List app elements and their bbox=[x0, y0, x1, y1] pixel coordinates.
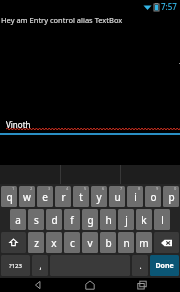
button[interactable]: , bbox=[32, 255, 48, 276]
staticText: 3 bbox=[48, 186, 51, 191]
button[interactable]: t bbox=[73, 186, 89, 207]
button[interactable]: c bbox=[64, 232, 80, 253]
staticText: 9 bbox=[156, 186, 159, 191]
button[interactable]: v bbox=[82, 232, 98, 253]
staticText: j bbox=[125, 213, 128, 227]
staticText: m bbox=[139, 236, 149, 250]
staticText: l bbox=[161, 213, 164, 227]
button[interactable]: Vinoth bbox=[0, 31, 180, 135]
staticText: q bbox=[6, 190, 13, 204]
button[interactable]: q bbox=[1, 186, 17, 207]
staticText: d bbox=[51, 213, 58, 227]
button[interactable]: x bbox=[46, 232, 62, 253]
button[interactable]: b bbox=[100, 232, 116, 253]
staticText: 7 bbox=[120, 186, 123, 191]
button[interactable]: k bbox=[136, 209, 152, 230]
staticText: u bbox=[114, 190, 121, 204]
button[interactable]: g bbox=[82, 209, 98, 230]
staticText: n bbox=[123, 236, 130, 250]
staticText: h bbox=[105, 213, 112, 227]
button[interactable]: Home bbox=[77, 278, 103, 292]
staticText: b bbox=[105, 236, 112, 250]
button[interactable]: m bbox=[136, 232, 152, 253]
staticText: r bbox=[61, 190, 66, 204]
button[interactable]: . bbox=[132, 255, 148, 276]
button[interactable]: z bbox=[28, 232, 44, 253]
button[interactable]: j bbox=[118, 209, 134, 230]
button[interactable]: Shift bbox=[1, 232, 26, 253]
staticText: a bbox=[15, 213, 21, 227]
staticText: 7:57 bbox=[161, 1, 177, 12]
staticText: Done bbox=[155, 261, 174, 271]
staticText: 0 bbox=[174, 186, 177, 191]
staticText: w bbox=[23, 190, 31, 204]
button[interactable]: d bbox=[46, 209, 62, 230]
staticText: v bbox=[87, 236, 93, 250]
staticText: 6 bbox=[102, 186, 105, 191]
button[interactable]: r bbox=[55, 186, 71, 207]
button[interactable]: i bbox=[127, 186, 143, 207]
button[interactable]: Back bbox=[26, 278, 52, 292]
button[interactable]: y bbox=[91, 186, 107, 207]
button[interactable]: e bbox=[37, 186, 53, 207]
staticText: o bbox=[150, 190, 157, 204]
staticText: x bbox=[51, 236, 57, 250]
button[interactable]: Recent apps bbox=[129, 278, 155, 292]
staticText: Vinoth bbox=[6, 119, 31, 130]
staticText: . bbox=[139, 260, 142, 271]
button[interactable]: a bbox=[10, 209, 26, 230]
staticText: 4 bbox=[66, 186, 69, 191]
button[interactable]: l bbox=[154, 209, 170, 230]
staticText: , bbox=[39, 260, 42, 271]
staticText: g bbox=[87, 213, 94, 227]
staticText: s bbox=[34, 213, 39, 227]
staticText: y bbox=[96, 190, 102, 204]
staticText: f bbox=[70, 213, 74, 227]
button[interactable]: s bbox=[28, 209, 44, 230]
staticText: t bbox=[79, 190, 83, 204]
staticText: z bbox=[34, 236, 39, 250]
staticText: 5 bbox=[84, 186, 87, 191]
staticText: c bbox=[70, 236, 75, 250]
staticText: 1 bbox=[12, 186, 15, 191]
button[interactable]: p bbox=[163, 186, 179, 207]
staticText: 2 bbox=[30, 186, 33, 191]
button[interactable]: o bbox=[145, 186, 161, 207]
staticText: ?123 bbox=[9, 262, 22, 270]
button[interactable]: Backspace bbox=[154, 232, 179, 253]
button[interactable]: Done bbox=[150, 255, 179, 276]
staticText: p bbox=[168, 190, 175, 204]
button[interactable]: n bbox=[118, 232, 134, 253]
staticText: k bbox=[141, 213, 147, 227]
staticText: Hey am Entry control alias TextBox bbox=[1, 15, 123, 25]
staticText: e bbox=[42, 190, 48, 204]
staticText: i bbox=[134, 190, 137, 204]
button[interactable]: ?123 bbox=[1, 255, 30, 276]
button[interactable]: h bbox=[100, 209, 116, 230]
button[interactable]: u bbox=[109, 186, 125, 207]
staticText: 8 bbox=[138, 186, 141, 191]
button[interactable]: w bbox=[19, 186, 35, 207]
button[interactable]: f bbox=[64, 209, 80, 230]
